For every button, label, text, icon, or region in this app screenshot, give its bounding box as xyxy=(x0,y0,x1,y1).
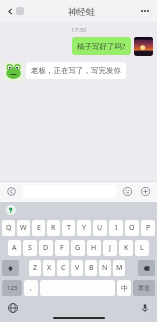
button[interactable]: Contact avatar xyxy=(4,62,23,81)
staticText: Z xyxy=(33,263,38,273)
staticText: N xyxy=(102,263,108,273)
staticText: C xyxy=(61,263,66,273)
button[interactable]: D xyxy=(39,240,53,256)
staticText: 稿子写好了吗? xyxy=(77,41,126,51)
button[interactable]: Y xyxy=(77,220,91,236)
button[interactable]: E xyxy=(32,220,45,236)
staticText: 中 xyxy=(121,284,128,293)
staticText: L xyxy=(140,243,144,253)
button[interactable]: My avatar xyxy=(134,37,153,56)
button[interactable]: 老板，正在写了，写完发你 xyxy=(26,62,126,79)
staticText: 神经蛙 xyxy=(68,6,95,17)
staticText: 发送 xyxy=(138,284,150,292)
staticText: M xyxy=(116,263,123,273)
button[interactable]: Backspace xyxy=(138,260,155,276)
button[interactable]: L xyxy=(135,240,149,256)
staticText: O xyxy=(129,223,135,233)
button[interactable]: A xyxy=(8,240,21,256)
button[interactable]: 123 xyxy=(2,280,22,296)
staticText: R xyxy=(51,223,56,233)
button[interactable]: I xyxy=(109,220,123,236)
button[interactable]: 发送 xyxy=(133,280,155,296)
staticText: , xyxy=(30,283,32,293)
staticText: Y xyxy=(82,223,86,233)
button[interactable]: U xyxy=(93,220,107,236)
staticText: U xyxy=(97,223,103,233)
button[interactable]: S xyxy=(23,240,37,256)
staticText: D xyxy=(43,243,49,253)
button[interactable]: J xyxy=(103,240,117,256)
button[interactable]: , xyxy=(24,280,38,296)
button[interactable]: C xyxy=(57,260,69,276)
staticText: J xyxy=(109,243,111,253)
button[interactable]: Voice xyxy=(138,301,151,314)
staticText: E xyxy=(37,223,41,233)
button[interactable]: More xyxy=(138,184,153,199)
button[interactable]: F xyxy=(55,240,69,256)
button[interactable]: Language xyxy=(6,301,19,314)
button[interactable]: More options xyxy=(138,6,152,16)
staticText: T xyxy=(67,223,71,233)
button[interactable]: Z xyxy=(29,260,41,276)
button[interactable]: N xyxy=(99,260,111,276)
staticText: G xyxy=(75,243,81,253)
staticText: B xyxy=(89,263,94,273)
button[interactable]: Back xyxy=(5,4,26,18)
button[interactable]: T xyxy=(62,220,75,236)
button[interactable]: Q xyxy=(2,220,15,236)
button[interactable]: X xyxy=(43,260,55,276)
button[interactable]: K xyxy=(119,240,133,256)
staticText: H xyxy=(91,243,97,253)
staticText: 17:30 xyxy=(71,26,87,34)
staticText: W xyxy=(20,223,27,233)
staticText: P xyxy=(146,223,151,233)
staticText: K xyxy=(124,243,129,253)
button[interactable]: Shift xyxy=(2,260,19,276)
button[interactable]: R xyxy=(47,220,60,236)
staticText: S xyxy=(28,243,32,253)
staticText: I xyxy=(115,223,118,233)
button[interactable]: H xyxy=(87,240,101,256)
button[interactable]: Voice input xyxy=(4,184,19,199)
staticText: 123 xyxy=(7,284,18,292)
staticText: 老板，正在写了，写完发你 xyxy=(31,66,121,75)
staticText: F xyxy=(60,243,64,253)
button[interactable]: 稿子写好了吗? xyxy=(72,37,131,55)
staticText: A xyxy=(12,243,17,253)
button[interactable]: O xyxy=(125,220,139,236)
staticText: X xyxy=(47,263,52,273)
button[interactable]: B xyxy=(85,260,97,276)
button[interactable]: G xyxy=(71,240,85,256)
button[interactable]: 中 xyxy=(117,280,131,296)
staticText: Q xyxy=(6,223,12,233)
staticText: V xyxy=(75,263,80,273)
button[interactable]: P xyxy=(141,220,155,236)
button[interactable]: V xyxy=(71,260,83,276)
button[interactable]: Input method xyxy=(6,205,16,215)
button[interactable]: W xyxy=(17,220,30,236)
button[interactable]: Emoji xyxy=(120,184,135,199)
button[interactable]: M xyxy=(113,260,125,276)
